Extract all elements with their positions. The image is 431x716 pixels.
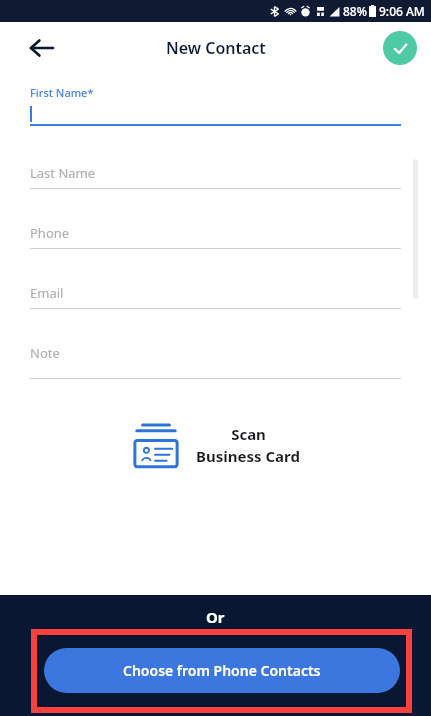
- staticText: Scan: [231, 424, 266, 444]
- staticText: Last Name: [30, 164, 96, 182]
- staticText: 9:06 AM: [379, 3, 425, 19]
- button[interactable]: [30, 104, 401, 124]
- staticText: New Contact: [166, 37, 266, 59]
- button[interactable]: Phone: [30, 224, 401, 249]
- staticText: Email: [30, 284, 64, 302]
- staticText: 88%: [343, 3, 367, 19]
- button[interactable]: Save contact: [383, 31, 417, 65]
- staticText: Choose from Phone Contacts: [123, 661, 321, 680]
- button[interactable]: Scan: [30, 422, 401, 468]
- button[interactable]: Last Name: [30, 164, 401, 189]
- staticText: Or: [206, 607, 225, 627]
- staticText: Business Card: [196, 446, 300, 466]
- staticText: Phone: [30, 224, 70, 242]
- button[interactable]: Choose from Phone Contacts: [44, 648, 400, 693]
- button[interactable]: Back: [20, 26, 64, 70]
- staticText: First Name*: [30, 85, 94, 100]
- staticText: Note: [30, 344, 60, 362]
- button[interactable]: Note: [30, 344, 401, 379]
- button[interactable]: Email: [30, 284, 401, 309]
